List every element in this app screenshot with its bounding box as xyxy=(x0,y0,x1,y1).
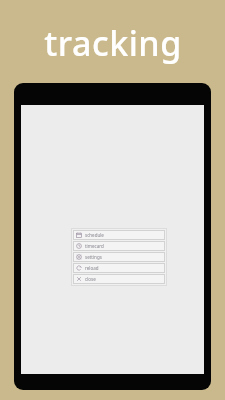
button[interactable]: close xyxy=(73,274,165,284)
staticText: timecard xyxy=(85,243,104,249)
staticText: reload xyxy=(85,265,99,271)
button[interactable]: timecard xyxy=(73,241,165,251)
button[interactable]: reload xyxy=(73,263,165,273)
staticText: settings xyxy=(85,254,102,260)
button[interactable]: schedule xyxy=(73,230,165,240)
staticText: tracking xyxy=(44,20,182,66)
staticText: schedule xyxy=(85,232,104,238)
button[interactable]: settings xyxy=(73,252,165,262)
staticText: close xyxy=(85,276,96,282)
